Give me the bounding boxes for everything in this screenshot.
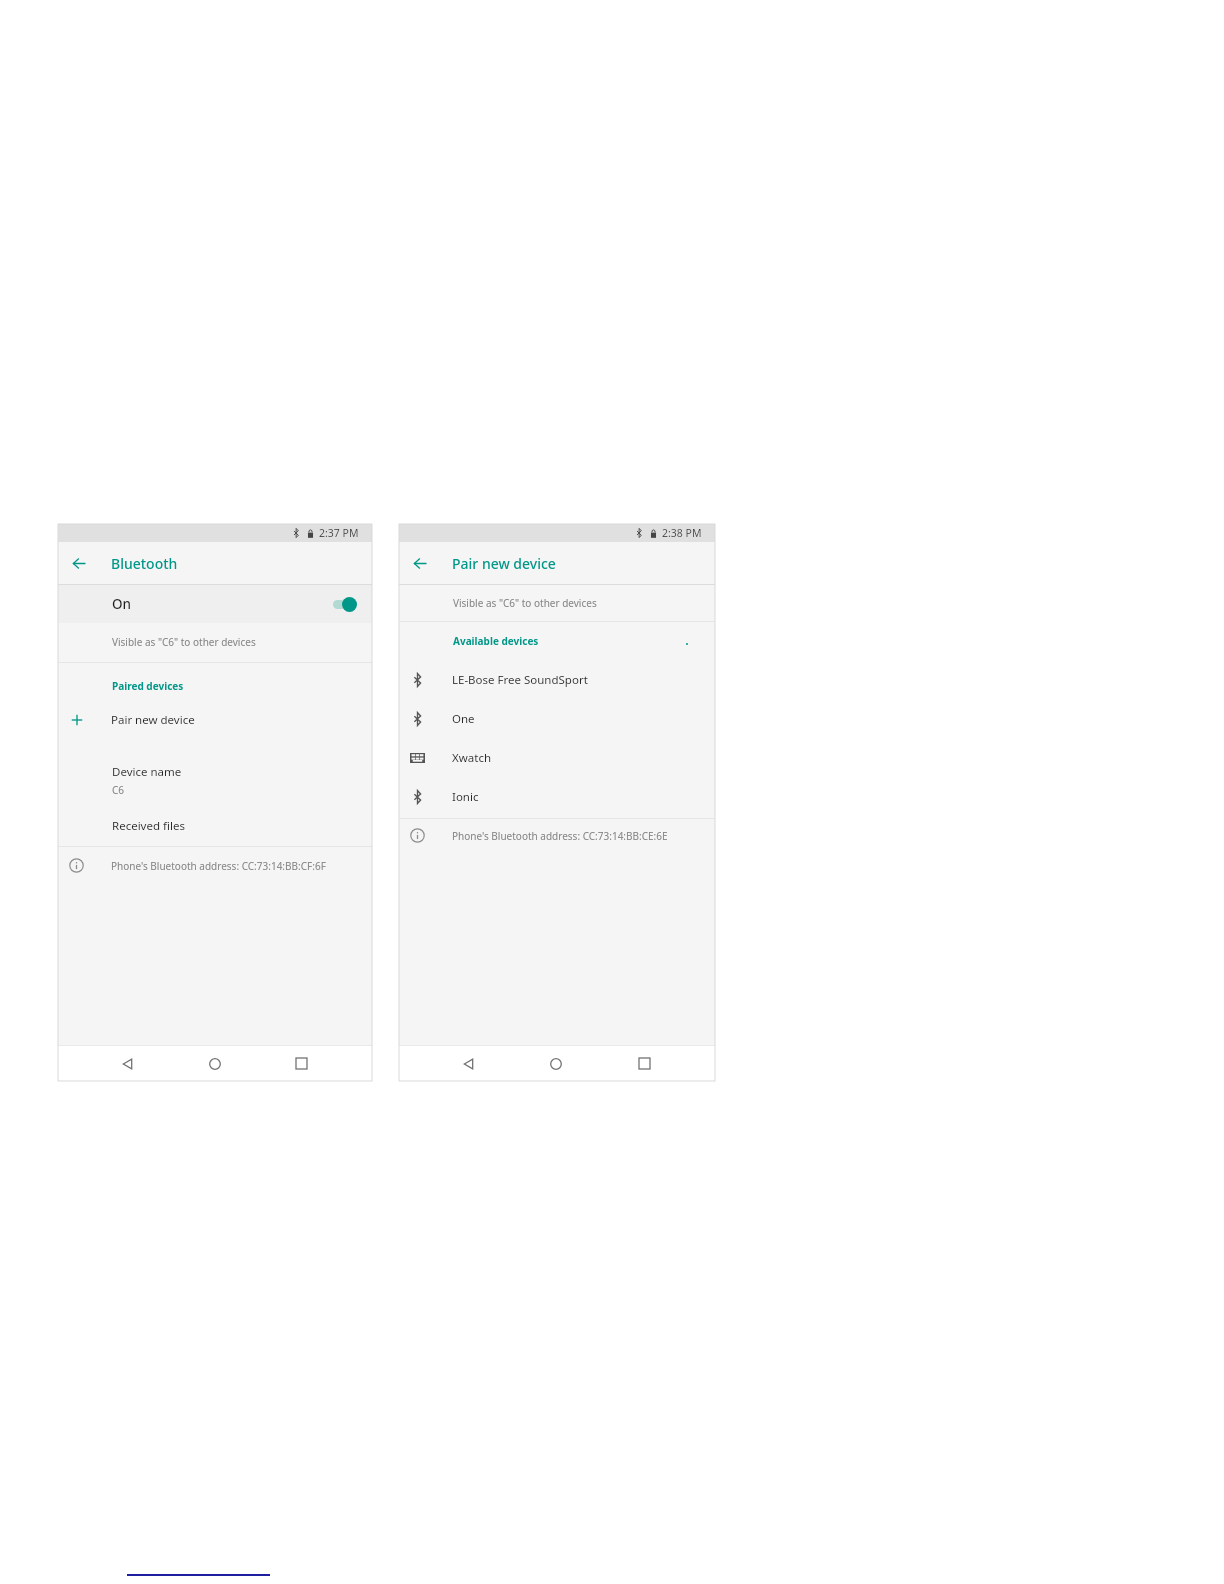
button[interactable]: Home	[171, 1046, 258, 1081]
button[interactable]: Visible as "C6" to other devices	[58, 623, 372, 662]
button[interactable]: Phone's Bluetooth address: CC:73:14:BB:C…	[399, 819, 715, 852]
button[interactable]: Visible as "C6" to other devices	[399, 585, 715, 621]
button[interactable]: Available devices	[399, 622, 715, 660]
staticText: Available devices	[453, 634, 539, 648]
button[interactable]: One	[399, 699, 715, 738]
staticText: Paired devices	[112, 679, 184, 693]
button[interactable]: On	[58, 585, 372, 623]
button[interactable]: LE-Bose Free SoundSport	[399, 660, 715, 699]
staticText: Received files	[112, 818, 185, 834]
staticText: Xwatch	[452, 750, 492, 766]
button[interactable]: Back	[84, 1046, 171, 1081]
staticText: Pair new device	[111, 712, 195, 728]
staticText: 2:37 PM	[319, 526, 359, 540]
staticText: Phone's Bluetooth address: CC:73:14:BB:C…	[111, 859, 326, 873]
button[interactable]: Back	[399, 542, 436, 584]
button[interactable]: Device name	[58, 764, 372, 797]
staticText: Device name	[112, 764, 182, 780]
button[interactable]: Recents	[600, 1046, 688, 1081]
button[interactable]: Bluetooth on/off	[331, 597, 357, 612]
button[interactable]: Received files	[58, 818, 372, 834]
staticText: One	[452, 711, 475, 727]
button[interactable]: Ionic	[399, 777, 715, 816]
button[interactable]: Pair new device	[58, 711, 372, 729]
staticText: Bluetooth	[111, 554, 178, 573]
staticText: Ionic	[452, 789, 479, 805]
staticText: 2:38 PM	[662, 526, 702, 540]
button[interactable]: Recents	[258, 1046, 345, 1081]
button[interactable]: Xwatch	[399, 738, 715, 777]
staticText: Phone's Bluetooth address: CC:73:14:BB:C…	[452, 829, 668, 843]
staticText: Visible as "C6" to other devices	[453, 596, 597, 610]
staticText: On	[112, 595, 132, 613]
button[interactable]: Back	[58, 542, 95, 584]
staticText: Pair new device	[452, 554, 556, 573]
button[interactable]: Home	[512, 1046, 600, 1081]
staticText: Visible as "C6" to other devices	[112, 635, 256, 649]
button[interactable]: Back	[425, 1046, 512, 1081]
staticText: LE-Bose Free SoundSport	[452, 672, 588, 688]
staticText: C6	[112, 783, 125, 797]
